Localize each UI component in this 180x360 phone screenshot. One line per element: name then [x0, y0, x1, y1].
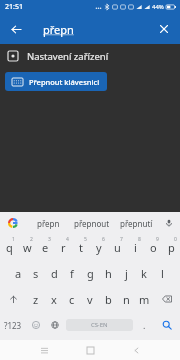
button[interactable]: l: [153, 260, 171, 286]
staticText: CS·EN: [91, 321, 108, 329]
button[interactable]: g: [81, 260, 99, 286]
staticText: 44%: [152, 3, 164, 11]
staticText: z: [33, 292, 39, 307]
button[interactable]: CS·EN: [66, 319, 133, 331]
button[interactable]: Voice input: [158, 212, 180, 234]
staticText: n: [123, 292, 130, 307]
button[interactable]: Nastavení zařízení: [0, 44, 180, 68]
staticText: 21:51: [5, 2, 23, 12]
button[interactable]: a: [9, 260, 27, 286]
staticText: 4: [66, 236, 69, 243]
button[interactable]: Change language: [45, 312, 64, 338]
staticText: ?123: [4, 320, 22, 331]
staticText: e: [42, 240, 49, 255]
staticText: u: [114, 240, 121, 255]
staticText: g: [87, 266, 94, 281]
button[interactable]: i: [126, 234, 144, 260]
staticText: Přepnout klávesnici: [29, 77, 100, 87]
button[interactable]: j: [117, 260, 135, 286]
button[interactable]: d: [45, 260, 63, 286]
button[interactable]: přepn: [26, 212, 70, 234]
button[interactable]: Shift: [0, 286, 27, 312]
button[interactable]: w: [18, 234, 36, 260]
staticText: w: [23, 240, 32, 255]
button[interactable]: e: [36, 234, 54, 260]
button[interactable]: Home: [75, 340, 105, 360]
button[interactable]: x: [45, 286, 63, 312]
button[interactable]: Recents: [29, 340, 59, 360]
staticText: .: [143, 319, 146, 331]
staticText: q: [6, 240, 13, 255]
button[interactable]: z: [27, 286, 45, 312]
staticText: r: [61, 240, 66, 255]
staticText: 2: [30, 236, 33, 243]
button[interactable]: k: [135, 260, 153, 286]
button[interactable]: u: [108, 234, 126, 260]
button[interactable]: y: [90, 234, 108, 260]
button[interactable]: b: [99, 286, 117, 312]
button[interactable]: Backspace: [153, 286, 180, 312]
staticText: přepnout: [74, 218, 110, 229]
staticText: i: [134, 240, 137, 255]
staticText: 0: [174, 236, 177, 243]
staticText: l: [161, 266, 164, 281]
staticText: přepn: [37, 218, 60, 229]
staticText: x: [51, 292, 57, 307]
button[interactable]: r: [54, 234, 72, 260]
button[interactable]: Search: [154, 312, 180, 338]
staticText: 8: [138, 236, 141, 243]
staticText: m: [139, 292, 150, 307]
button[interactable]: p: [162, 234, 180, 260]
button[interactable]: Google: [0, 212, 26, 234]
button[interactable]: .: [135, 312, 154, 338]
staticText: y: [96, 240, 102, 255]
button[interactable]: t: [72, 234, 90, 260]
button[interactable]: Emoji: [26, 312, 45, 338]
button[interactable]: v: [81, 286, 99, 312]
staticText: 3: [48, 236, 51, 243]
button[interactable]: o: [144, 234, 162, 260]
button[interactable]: Back: [121, 340, 151, 360]
staticText: b: [105, 292, 112, 307]
staticText: 7: [120, 236, 123, 243]
staticText: přepn: [43, 22, 74, 37]
staticText: 5: [84, 236, 87, 243]
button[interactable]: Clear: [152, 17, 176, 41]
staticText: h: [105, 266, 112, 281]
staticText: t: [79, 240, 83, 255]
staticText: v: [87, 292, 93, 307]
button[interactable]: přepnout: [70, 212, 114, 234]
button[interactable]: přepnutí: [114, 212, 158, 234]
staticText: přepnutí: [120, 218, 153, 229]
staticText: j: [125, 266, 128, 281]
button[interactable]: m: [135, 286, 153, 312]
staticText: o: [150, 240, 157, 255]
button[interactable]: n: [117, 286, 135, 312]
staticText: a: [15, 266, 22, 281]
staticText: Nastavení zařízení: [27, 50, 109, 63]
button[interactable]: h: [99, 260, 117, 286]
staticText: d: [51, 266, 58, 281]
staticText: s: [33, 266, 39, 281]
staticText: c: [69, 292, 75, 307]
staticText: k: [141, 266, 147, 281]
button[interactable]: c: [63, 286, 81, 312]
button[interactable]: Back: [4, 17, 28, 41]
button[interactable]: s: [27, 260, 45, 286]
button[interactable]: f: [63, 260, 81, 286]
button[interactable]: Přepnout klávesnici: [5, 72, 107, 91]
staticText: 1: [12, 236, 15, 243]
staticText: p: [168, 240, 175, 255]
button[interactable]: q: [0, 234, 18, 260]
staticText: 9: [156, 236, 159, 243]
staticText: 6: [102, 236, 105, 243]
staticText: f: [70, 266, 74, 281]
button[interactable]: ?123: [0, 312, 26, 338]
